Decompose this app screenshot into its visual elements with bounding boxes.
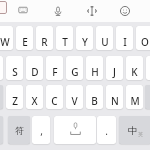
button[interactable]: Y: [76, 26, 93, 50]
staticText: D: [31, 65, 39, 79]
button[interactable]: A: [0, 56, 3, 80]
button[interactable]: D: [26, 56, 43, 80]
staticText: 中: [128, 125, 138, 137]
button[interactable]: [0, 1, 7, 14]
staticText: C: [51, 94, 58, 108]
button[interactable]: K: [126, 56, 143, 80]
button[interactable]: Move cursor: [83, 0, 101, 22]
button[interactable]: Voice input: [49, 0, 67, 22]
staticText: T: [62, 35, 68, 49]
button[interactable]: E: [16, 26, 33, 50]
staticText: G: [71, 65, 79, 79]
button[interactable]: I: [116, 26, 133, 50]
button[interactable]: 符: [8, 116, 30, 144]
staticText: K: [131, 65, 138, 79]
button[interactable]: J: [106, 56, 123, 80]
staticText: F: [52, 65, 58, 79]
button[interactable]: Z: [6, 85, 23, 109]
button[interactable]: [54, 116, 96, 144]
button[interactable]: M: [126, 85, 143, 109]
staticText: V: [71, 94, 78, 108]
staticText: M: [130, 94, 140, 108]
staticText: B: [91, 94, 98, 108]
button[interactable]: .: [97, 116, 116, 144]
button[interactable]: G: [66, 56, 83, 80]
staticText: O: [141, 35, 149, 49]
button[interactable]: R: [36, 26, 53, 50]
button[interactable]: T: [56, 26, 73, 50]
staticText: E: [22, 35, 28, 49]
staticText: Y: [82, 35, 88, 49]
staticText: N: [111, 94, 119, 108]
staticText: ,: [40, 124, 43, 138]
staticText: Z: [12, 94, 18, 108]
button[interactable]: N: [106, 85, 123, 109]
button[interactable]: S: [6, 56, 23, 80]
staticText: 英: [138, 131, 143, 137]
button[interactable]: V: [66, 85, 83, 109]
staticText: X: [31, 94, 38, 108]
button[interactable]: B: [86, 85, 103, 109]
button[interactable]: W: [0, 26, 13, 50]
staticText: 符: [15, 125, 24, 136]
button[interactable]: H: [86, 56, 103, 80]
button[interactable]: Emoji: [116, 0, 134, 22]
button[interactable]: O: [136, 26, 150, 50]
staticText: J: [113, 65, 116, 79]
button[interactable]: Switch keyboard: [14, 0, 32, 21]
button[interactable]: 中: [119, 116, 150, 144]
staticText: S: [12, 65, 18, 79]
staticText: R: [41, 35, 48, 49]
button[interactable]: L: [146, 56, 150, 80]
button[interactable]: X: [26, 85, 43, 109]
button[interactable]: F: [46, 56, 63, 80]
button[interactable]: ,: [32, 116, 50, 144]
button[interactable]: U: [96, 26, 113, 50]
staticText: U: [101, 35, 109, 49]
staticText: .: [105, 124, 108, 138]
staticText: W: [0, 35, 10, 49]
button[interactable]: C: [46, 85, 63, 109]
staticText: H: [91, 65, 99, 79]
staticText: I: [123, 35, 127, 49]
